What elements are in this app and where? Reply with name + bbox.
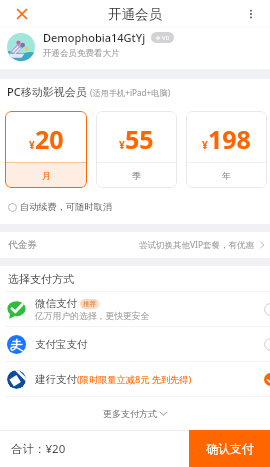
button[interactable]: 建行支付: [5, 362, 270, 396]
button[interactable]: 自动续费，可随时取消: [8, 196, 270, 218]
button[interactable]: 代金券: [8, 232, 265, 258]
button[interactable]: 更多支付方式: [0, 397, 270, 430]
button[interactable]: 微信支付: [5, 292, 270, 326]
staticText: Demophobia14GtYj: [43, 30, 146, 45]
button[interactable]: More options: [244, 7, 258, 21]
staticText: 20: [35, 122, 64, 156]
staticText: 尝试切换其他VIP套餐，有优惠: [139, 239, 255, 251]
staticText: (适用手机+iPad+电脑): [90, 87, 171, 98]
staticText: 年: [222, 170, 231, 181]
staticText: 确认支付: [206, 441, 254, 456]
staticText: 更多支付方式: [103, 408, 157, 419]
staticText: 55: [125, 122, 154, 156]
staticText: PC移动影视会员: [7, 84, 87, 99]
button[interactable]: ¥: [96, 111, 177, 188]
staticText: 198: [208, 122, 251, 156]
staticText: 微信支付: [35, 297, 77, 310]
staticText: 自动续费，可随时取消: [20, 201, 112, 213]
staticText: (限时限量立减8元 先到先得): [77, 373, 192, 386]
button[interactable]: ¥: [5, 111, 87, 188]
staticText: 合计：¥20: [11, 441, 66, 457]
staticText: 建行支付: [35, 373, 77, 386]
staticText: 季: [132, 170, 141, 181]
staticText: 月: [42, 170, 51, 181]
staticText: 推荐: [83, 300, 96, 308]
button[interactable]: 确认支付: [189, 430, 270, 467]
staticText: 开通会员免费看大片: [43, 48, 120, 59]
staticText: 亿万用户的选择，更快更安全: [35, 311, 150, 322]
staticText: ¥: [202, 138, 208, 152]
staticText: 代金券: [8, 239, 38, 251]
staticText: ¥: [29, 138, 35, 152]
staticText: ¥: [119, 138, 125, 152]
staticText: 支付宝支付: [35, 338, 88, 351]
button[interactable]: 支付宝支付: [5, 327, 270, 361]
staticText: 开通会员: [108, 6, 162, 23]
button[interactable]: Close: [15, 7, 29, 21]
button[interactable]: ¥: [186, 111, 267, 188]
staticText: 选择支付方式: [8, 272, 74, 286]
staticText: V0: [162, 34, 170, 42]
